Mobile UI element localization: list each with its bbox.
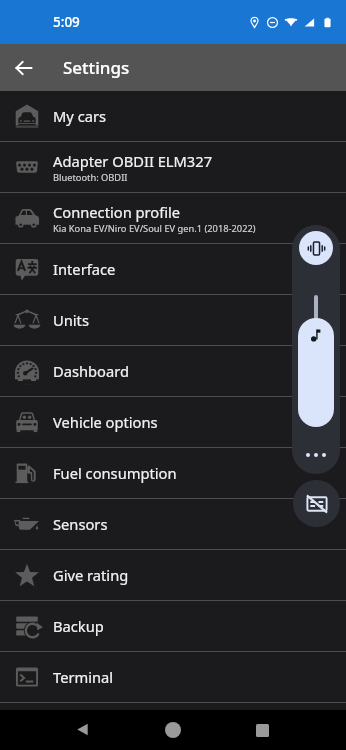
staticText: Kia Kona EV/Niro EV/Soul EV gen.1 (2018-… (53, 222, 256, 235)
staticText: Fuel consumption (53, 463, 177, 483)
button[interactable]: My cars (0, 91, 346, 141)
button[interactable]: Recents (218, 710, 346, 750)
staticText: Interface (53, 259, 116, 279)
button[interactable]: Terminal (0, 652, 346, 702)
button[interactable]: Fuel consumption (0, 448, 346, 498)
button[interactable]: Sensors (0, 499, 346, 549)
button[interactable]: Connection profile (0, 193, 346, 243)
button[interactable]: Dashboard (0, 346, 346, 396)
button[interactable]: Units (0, 295, 346, 345)
button[interactable]: Backup (0, 601, 346, 651)
button[interactable]: Media volume (298, 318, 334, 427)
staticText: Dashboard (53, 361, 130, 381)
staticText: Give rating (53, 565, 129, 585)
staticText: 5:09 (53, 13, 80, 31)
staticText: Sensors (53, 514, 108, 534)
button[interactable]: More (301, 440, 331, 470)
staticText: Adapter OBDII ELM327 (53, 151, 213, 171)
button[interactable]: Interface (0, 244, 346, 294)
staticText: Settings (63, 56, 130, 79)
staticText: My cars (53, 106, 107, 126)
button[interactable]: Ringer mode (299, 231, 333, 265)
button[interactable]: Back (0, 44, 47, 91)
staticText: Units (53, 310, 89, 330)
staticText: Bluetooth: OBDII (53, 171, 128, 184)
staticText: Vehicle options (53, 412, 158, 432)
staticText: Connection profile (53, 202, 181, 222)
button[interactable]: Adapter OBDII ELM327 (0, 142, 346, 192)
button[interactable]: Vehicle options (0, 397, 346, 447)
button[interactable]: Home (128, 710, 218, 750)
staticText: Terminal (53, 667, 114, 687)
button[interactable]: Back (0, 710, 128, 750)
button[interactable]: Captions (293, 480, 340, 527)
staticText: Backup (53, 616, 104, 636)
button[interactable]: Give rating (0, 550, 346, 600)
